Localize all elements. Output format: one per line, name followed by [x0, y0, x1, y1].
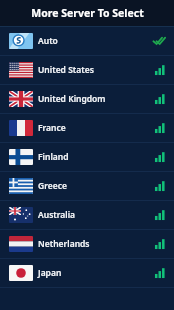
staticText: Japan	[38, 267, 62, 279]
staticText: United Kingdom	[38, 93, 106, 105]
button[interactable]: Finland	[0, 143, 174, 171]
button[interactable]: Netherlands	[0, 230, 174, 258]
other: Signal strength	[154, 267, 166, 279]
other: Signal strength	[154, 209, 166, 221]
staticText: Finland	[38, 151, 69, 163]
button[interactable]: United States	[0, 56, 174, 84]
staticText: Auto	[38, 35, 58, 47]
other: Selected	[152, 34, 166, 48]
other: Signal strength	[154, 151, 166, 163]
staticText: France	[38, 122, 66, 134]
staticText: Greece	[38, 180, 67, 192]
other: Signal strength	[154, 64, 166, 76]
button[interactable]: Japan	[0, 259, 174, 287]
staticText: Australia	[38, 209, 76, 221]
other: Signal strength	[154, 122, 166, 134]
button[interactable]: France	[0, 114, 174, 142]
other: Signal strength	[154, 238, 166, 250]
button[interactable]: Australia	[0, 201, 174, 229]
button[interactable]: Greece	[0, 172, 174, 200]
button[interactable]: United Kingdom	[0, 85, 174, 113]
staticText: Netherlands	[38, 238, 90, 250]
button[interactable]: Auto	[0, 27, 174, 55]
staticText: More Server To Select	[31, 6, 144, 20]
other: Signal strength	[154, 93, 166, 105]
other: Signal strength	[154, 180, 166, 192]
staticText: United States	[38, 64, 94, 76]
